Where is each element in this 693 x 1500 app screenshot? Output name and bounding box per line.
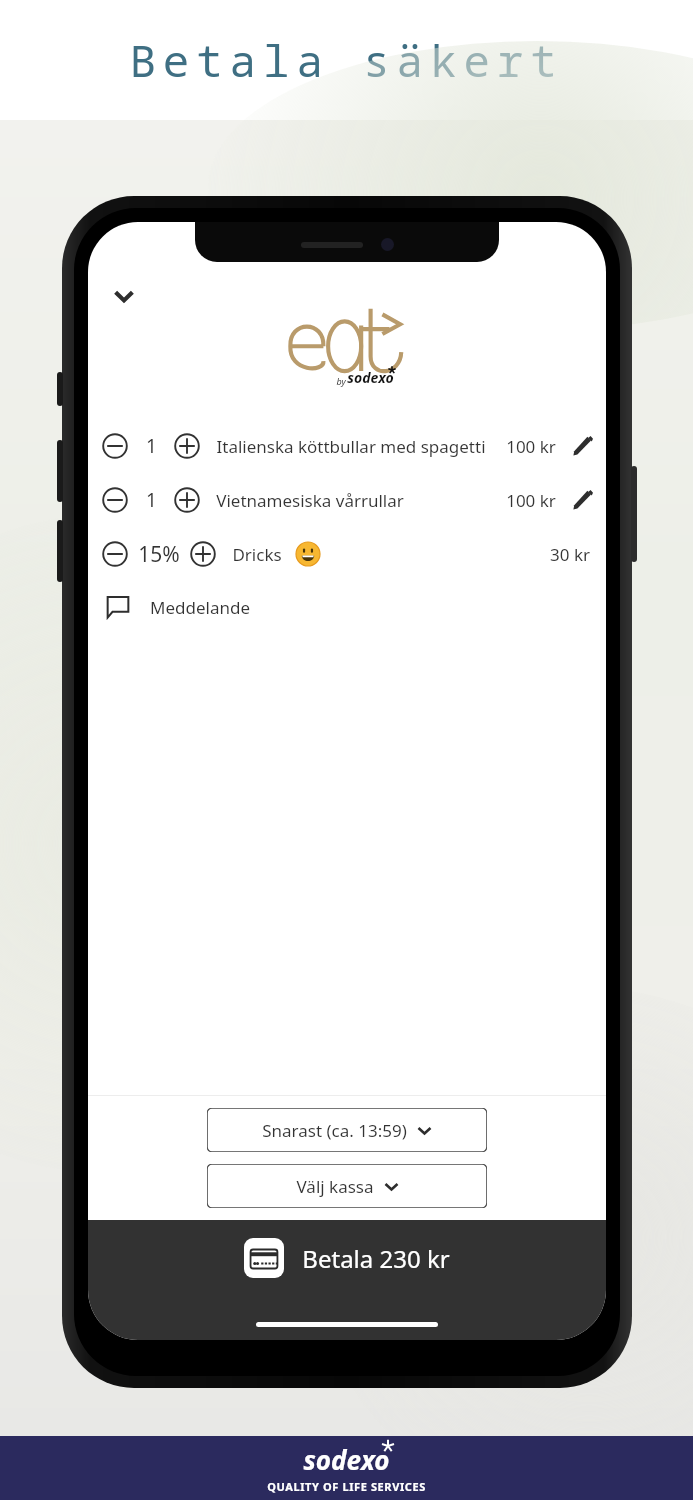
button[interactable]: Decrease bbox=[88, 419, 606, 473]
staticText: by bbox=[336, 375, 346, 387]
button[interactable]: Increase bbox=[170, 429, 204, 463]
button[interactable]: Collapse bbox=[100, 272, 148, 320]
button[interactable]: Välj kassa bbox=[207, 1164, 487, 1208]
staticText: Snarast (ca. 13:59) bbox=[262, 1119, 407, 1142]
staticText: 15% bbox=[138, 540, 180, 569]
staticText: Dricks bbox=[232, 543, 282, 566]
button[interactable]: Snarast (ca. 13:59) bbox=[207, 1108, 487, 1152]
staticText: Italienska köttbullar med spagetti bbox=[216, 435, 486, 458]
button[interactable]: Decrease bbox=[98, 483, 132, 517]
button[interactable]: Edit bbox=[566, 483, 600, 517]
button[interactable]: Edit bbox=[566, 429, 600, 463]
staticText: 100 kr bbox=[506, 435, 556, 458]
staticText: sodexo bbox=[303, 1442, 390, 1477]
staticText: 30 kr bbox=[550, 543, 590, 566]
staticText: 1 bbox=[146, 433, 157, 459]
button[interactable]: Decrease bbox=[88, 473, 606, 527]
staticText: 100 kr bbox=[506, 489, 556, 512]
button[interactable]: Increase bbox=[170, 483, 204, 517]
staticText: Vietnamesiska vårrullar bbox=[216, 489, 404, 512]
staticText: Välj kassa bbox=[296, 1175, 374, 1198]
staticText: 1 bbox=[146, 487, 157, 513]
button[interactable]: Decrease bbox=[88, 527, 606, 581]
button[interactable]: Decrease bbox=[98, 537, 132, 571]
staticText: Betala säkert bbox=[129, 30, 564, 90]
button[interactable]: Betala 230 kr bbox=[88, 1220, 606, 1340]
staticText: Meddelande bbox=[150, 596, 250, 619]
staticText: sodexo bbox=[347, 368, 394, 387]
button[interactable]: Meddelande bbox=[88, 581, 606, 633]
button[interactable]: Increase bbox=[186, 537, 220, 571]
staticText: Betala 230 kr bbox=[302, 1242, 450, 1275]
staticText: QUALITY OF LIFE SERVICES bbox=[267, 1479, 426, 1494]
button[interactable]: Decrease bbox=[98, 429, 132, 463]
